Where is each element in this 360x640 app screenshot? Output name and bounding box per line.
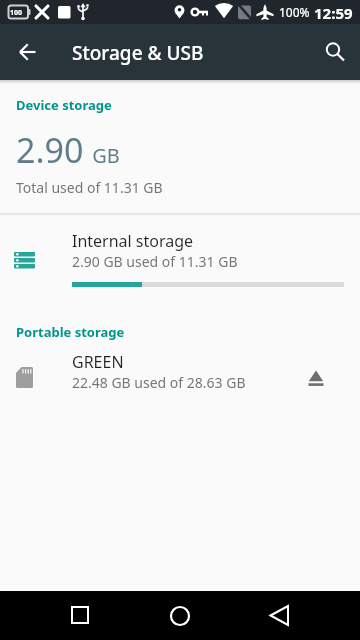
button[interactable]: [300, 366, 332, 398]
staticText: Total used of 11.31 GB: [16, 178, 163, 197]
button[interactable]: Internal storage: [0, 206, 360, 288]
staticText: 22.48 GB used of 28.63 GB: [72, 373, 246, 392]
button[interactable]: [318, 36, 350, 68]
staticText: Internal storage: [72, 230, 194, 252]
staticText: 100%: [279, 4, 310, 20]
button[interactable]: GREEN: [0, 346, 360, 404]
button[interactable]: [164, 600, 196, 632]
button[interactable]: [12, 36, 44, 68]
staticText: Portable storage: [16, 323, 125, 341]
staticText: GREEN: [72, 351, 124, 373]
staticText: 2.90 GB: [16, 127, 120, 173]
staticText: Storage & USB: [72, 40, 204, 66]
staticText: 12:59: [314, 3, 353, 23]
staticText: 2.90 GB used of 11.31 GB: [72, 252, 238, 271]
staticText: 100: [10, 8, 23, 18]
button[interactable]: [64, 600, 96, 632]
staticText: Device storage: [16, 96, 112, 114]
button[interactable]: [264, 600, 296, 632]
